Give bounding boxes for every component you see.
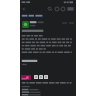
button[interactable]: Account: [67, 6, 74, 12]
button[interactable]: Notifications: [60, 6, 66, 12]
button[interactable]: Screenshot 2: [34, 75, 38, 79]
button[interactable]: Back: [21, 6, 27, 12]
button[interactable]: Screenshot 3: [39, 75, 43, 79]
button[interactable]: App icon: [22, 21, 29, 28]
button[interactable]: Help: [54, 6, 60, 12]
button[interactable]: Search: [47, 6, 53, 12]
button[interactable]: Screenshot 4: [44, 75, 48, 79]
button[interactable]: Screenshot 1: [21, 75, 31, 80]
